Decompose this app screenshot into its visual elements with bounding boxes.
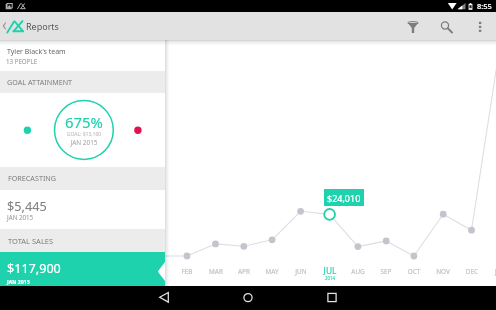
staticText: SEP — [371, 267, 401, 276]
staticText: JAN — [485, 267, 496, 276]
button[interactable]: Navigate up — [0, 12, 10, 40]
button[interactable] — [230, 263, 258, 283]
staticText: $117,900 — [7, 260, 61, 277]
staticText: FORECASTING — [8, 173, 57, 183]
staticText: Reports — [26, 20, 59, 32]
button[interactable] — [429, 263, 457, 283]
staticText: APR — [229, 267, 259, 276]
button[interactable] — [145, 263, 173, 283]
button[interactable] — [486, 263, 496, 283]
button[interactable]: Filter — [399, 12, 427, 40]
staticText: GOAL ATTAINMENT — [7, 77, 73, 87]
button[interactable] — [400, 263, 428, 283]
staticText: JUL — [315, 265, 345, 276]
button[interactable] — [258, 263, 286, 283]
staticText: OCT — [399, 267, 429, 276]
button[interactable]: More options — [469, 12, 491, 40]
button[interactable] — [0, 190, 165, 229]
staticText: 675% — [39, 112, 129, 132]
button[interactable] — [0, 229, 165, 252]
button[interactable] — [458, 263, 486, 283]
staticText: DEC — [457, 267, 487, 276]
staticText: JUN — [286, 267, 316, 276]
staticText: 13 PEOPLE — [6, 57, 38, 65]
button[interactable] — [202, 263, 230, 283]
button[interactable] — [287, 263, 315, 283]
button[interactable] — [0, 40, 165, 71]
staticText: 2014 — [315, 275, 345, 281]
staticText: TOTAL SALES — [8, 236, 54, 246]
button[interactable] — [173, 263, 201, 283]
staticText: 8:55 — [477, 1, 492, 11]
staticText: $5,445 — [7, 197, 47, 214]
button[interactable] — [0, 167, 165, 190]
button[interactable] — [316, 263, 344, 283]
staticText: JAN — [144, 267, 174, 276]
staticText: JAN 2015 — [7, 213, 34, 221]
button[interactable] — [0, 71, 165, 93]
staticText: AUG — [343, 267, 373, 276]
button[interactable]: Back — [146, 286, 182, 310]
staticText: Tyler Black's team — [7, 47, 66, 57]
staticText: FEB — [172, 267, 202, 276]
button[interactable] — [0, 252, 165, 286]
staticText: MAY — [257, 267, 287, 276]
staticText: NOV — [428, 267, 458, 276]
staticText: GOAL: $13,100 — [39, 131, 129, 138]
button[interactable]: Search — [431, 12, 459, 40]
staticText: JAN 2015 — [7, 278, 30, 285]
button[interactable] — [372, 263, 400, 283]
staticText: JAN 2015 — [39, 138, 129, 147]
button[interactable]: Home — [230, 286, 266, 310]
button[interactable]: Recent apps — [314, 286, 350, 310]
staticText: MAR — [201, 267, 231, 276]
button[interactable] — [344, 263, 372, 283]
staticText: $24,010 — [327, 192, 361, 204]
button[interactable]: $24,010 — [324, 189, 364, 206]
